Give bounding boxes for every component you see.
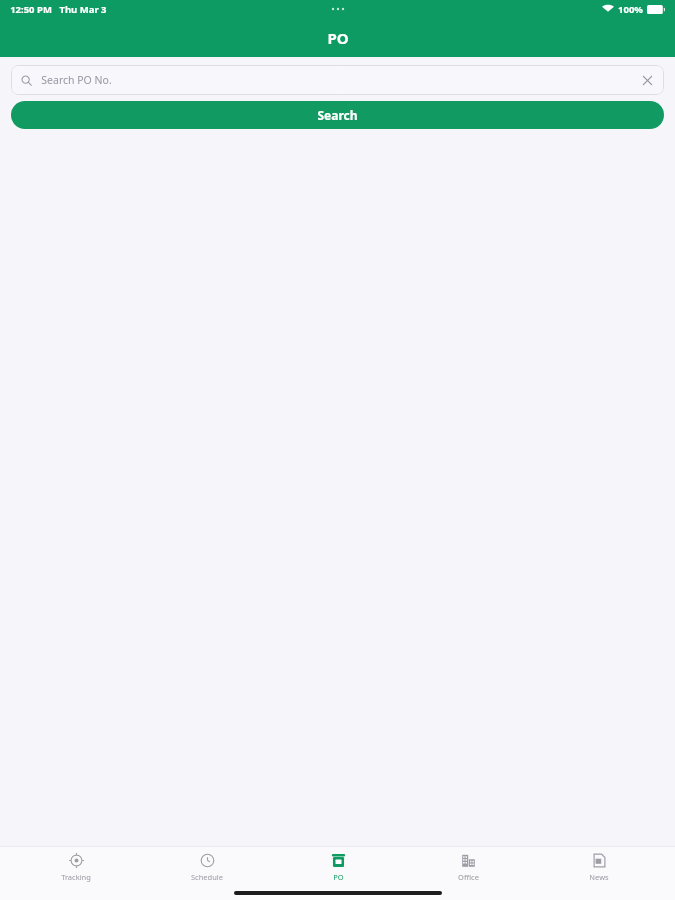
staticText: Schedule [191, 872, 223, 882]
button[interactable]: Clear search [640, 73, 654, 87]
staticText: Office [458, 872, 479, 882]
button[interactable]: Tracking [21, 850, 131, 884]
button[interactable]: News [544, 850, 654, 884]
staticText: 100% [618, 3, 643, 16]
button[interactable]: Search [11, 101, 664, 129]
staticText: Search PO No. [41, 73, 112, 87]
staticText: News [589, 872, 609, 882]
staticText: PO [327, 28, 349, 48]
staticText: 12:50 PM [10, 3, 52, 16]
staticText: Search [317, 107, 358, 123]
staticText: Thu Mar 3 [59, 3, 107, 16]
button[interactable]: PO [283, 850, 393, 884]
button[interactable]: Search PO No. [11, 65, 664, 95]
staticText: Tracking [61, 872, 91, 882]
button[interactable]: Schedule [152, 850, 262, 884]
staticText: PO [333, 872, 344, 882]
button[interactable]: Office [413, 850, 523, 884]
